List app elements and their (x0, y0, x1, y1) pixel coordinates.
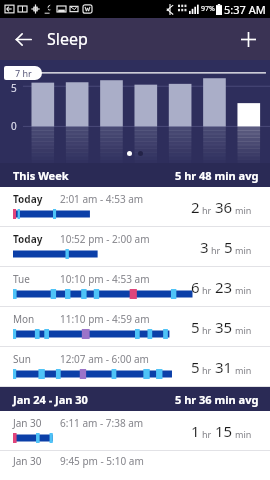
button[interactable]: Tue (0, 267, 270, 307)
staticText: min (235, 244, 252, 256)
staticText: 5 (224, 237, 233, 257)
staticText: 9:45 pm - 5:10 am (60, 454, 144, 468)
staticText: 7 hr (15, 67, 32, 79)
staticText: Today (13, 192, 43, 206)
staticText: Today (13, 232, 43, 246)
staticText: 5 (11, 81, 17, 95)
staticText: hr (202, 364, 212, 376)
staticText: 36 (215, 197, 233, 217)
staticText: 5 hr 48 min avg (175, 168, 259, 183)
staticText: 35 (215, 317, 233, 337)
staticText: Mon (13, 312, 35, 326)
staticText: 5 hr 36 min avg (175, 392, 259, 407)
staticText: Sun (13, 352, 31, 366)
staticText: 11:10 pm - 4:59 am (60, 312, 150, 326)
staticText: 2 (191, 197, 200, 217)
staticText: 6:11 am - 7:38 am (60, 416, 144, 430)
button[interactable]: Mon (0, 307, 270, 347)
staticText: 3 (200, 237, 209, 257)
staticText: 5:37 AM (224, 2, 266, 17)
staticText: hr (202, 324, 212, 336)
staticText: 10:10 pm - 4:53 am (60, 272, 150, 286)
button[interactable]: Back (8, 24, 38, 54)
staticText: 10:52 pm - 2:00 am (60, 232, 150, 246)
staticText: hr (211, 244, 221, 256)
staticText: 0 (11, 119, 17, 133)
staticText: This Week (13, 168, 69, 183)
staticText: 5 (191, 317, 200, 337)
staticText: 31 (215, 357, 233, 377)
staticText: hr (202, 204, 212, 216)
staticText: 2:01 am - 4:53 am (60, 192, 144, 206)
button[interactable]: Jan 24 - Jan 30 (0, 387, 270, 411)
staticText: Jan 30 (13, 416, 42, 430)
staticText: min (235, 204, 252, 216)
staticText: hr (202, 284, 212, 296)
staticText: 1 (191, 421, 200, 441)
staticText: min (235, 324, 252, 336)
staticText: min (235, 284, 252, 296)
staticText: min (235, 428, 252, 440)
staticText: Tue (13, 272, 30, 286)
staticText: Jan 30 (13, 454, 42, 468)
staticText: 5 (191, 357, 200, 377)
button[interactable]: This Week (0, 163, 270, 187)
staticText: 23 (215, 277, 233, 297)
button[interactable]: Add sleep (233, 24, 263, 54)
staticText: 6 (191, 277, 200, 297)
staticText: 15 (215, 421, 233, 441)
staticText: min (235, 364, 252, 376)
button[interactable]: Today (0, 227, 270, 267)
staticText: 97% (201, 4, 215, 14)
staticText: 12:07 am - 6:00 am (60, 352, 149, 366)
button[interactable]: Jan 30 (0, 411, 270, 451)
staticText: Sleep (47, 28, 88, 50)
staticText: Jan 24 - Jan 30 (13, 392, 88, 407)
button[interactable]: Sun (0, 347, 270, 387)
button[interactable]: Today (0, 187, 270, 227)
staticText: hr (202, 428, 212, 440)
